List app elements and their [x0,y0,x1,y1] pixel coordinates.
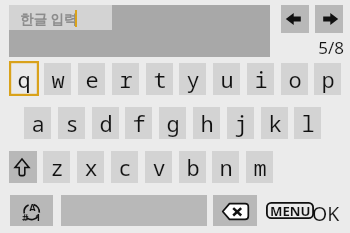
staticText: f [132,108,146,138]
button[interactable]: k [261,107,288,139]
button[interactable]: Previous candidates [281,5,309,33]
button[interactable]: l [294,107,321,139]
button[interactable]: z [43,151,70,183]
button[interactable]: p [314,63,341,95]
button[interactable]: Text input [9,5,270,57]
button[interactable]: Shift [9,151,37,183]
button[interactable]: Next candidates [315,5,343,33]
button[interactable]: v [145,151,172,183]
button[interactable]: a [24,107,51,139]
button[interactable]: Switch input mode [10,195,53,226]
button[interactable]: o [281,63,308,95]
button[interactable]: h [193,107,220,139]
button[interactable]: q [10,63,37,95]
staticText: g [166,108,180,138]
button[interactable]: j [227,107,254,139]
staticText: w [51,64,65,94]
button[interactable]: d [92,107,119,139]
staticText: q [17,64,31,94]
staticText: z [50,152,64,182]
staticText: e [85,64,99,94]
staticText: n [219,152,233,182]
staticText: k [268,108,282,138]
button[interactable]: s [58,107,85,139]
staticText: m [253,152,267,182]
staticText: b [186,152,200,182]
staticText: x [84,152,98,182]
button[interactable]: t [146,63,173,95]
staticText: # [22,211,29,221]
staticText: 1 [35,211,41,221]
staticText: d [99,108,113,138]
staticText: s [65,108,79,138]
button[interactable]: b [179,151,206,183]
staticText: j [234,108,248,138]
staticText: t [153,64,167,94]
staticText: i [254,64,268,94]
button[interactable]: Menu [266,202,314,219]
button[interactable]: c [111,151,138,183]
staticText: c [118,152,132,182]
button[interactable]: y [179,63,206,95]
staticText: r [119,64,133,94]
button[interactable]: x [77,151,104,183]
staticText: v [152,152,166,182]
staticText: p [321,64,335,94]
staticText: 5/8 [296,36,344,54]
button[interactable]: OK [309,200,343,222]
button[interactable]: e [78,63,105,95]
button[interactable]: Backspace [213,195,257,226]
button[interactable]: w [44,63,71,95]
staticText: MENU [270,202,311,219]
staticText: y [186,64,200,94]
button[interactable]: g [159,107,186,139]
button[interactable]: f [125,107,152,139]
staticText: OK [312,200,340,222]
button[interactable]: u [213,63,240,95]
staticText: A [29,201,36,211]
button[interactable]: i [247,63,274,95]
button[interactable]: m [246,151,273,183]
staticText: h [200,108,214,138]
button[interactable]: r [112,63,139,95]
staticText: a [31,108,45,138]
staticText: l [301,108,315,138]
staticText: u [220,64,234,94]
staticText: o [288,64,302,94]
button[interactable]: n [212,151,239,183]
staticText: 한글 입력 [20,10,78,28]
